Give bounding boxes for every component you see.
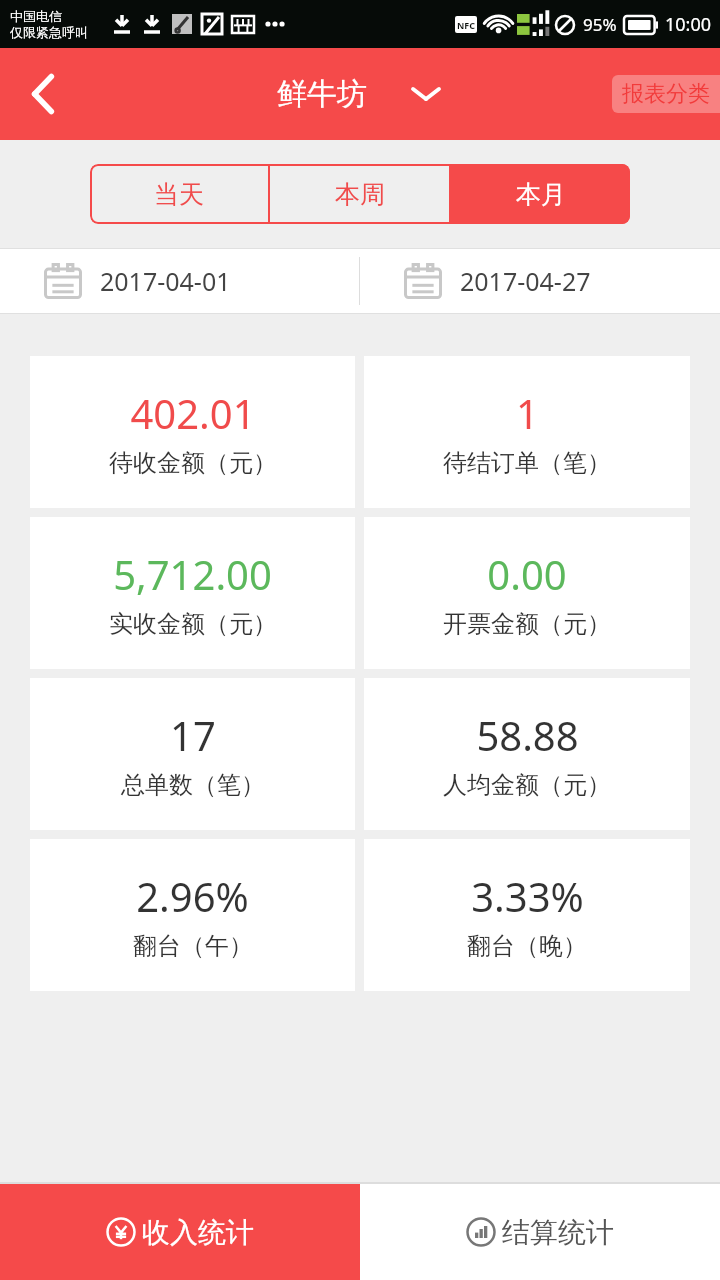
staticText: 3.33% [471,869,584,923]
button[interactable]: 鲜牛坊 [277,75,443,113]
button[interactable]: 1 [364,356,690,508]
button[interactable]: 本月 [451,164,630,224]
staticText: 收入统计 [142,1215,254,1250]
staticText: 0.00 [487,547,567,601]
staticText: 2017-04-27 [460,264,591,298]
staticText: 58.88 [476,708,579,762]
staticText: 2.96% [136,869,249,923]
staticText: 中国电信 [10,8,62,24]
button[interactable]: 2.96% [30,839,355,991]
button[interactable]: Back [0,48,86,140]
button[interactable]: 5,712.00 [30,517,355,669]
staticText: 鲜牛坊 [277,75,367,113]
button[interactable]: 58.88 [364,678,690,830]
staticText: 2017-04-01 [100,264,231,298]
staticText: 总单数（笔） [121,770,265,800]
button[interactable]: 3.33% [364,839,690,991]
staticText: 开票金额（元） [443,609,611,639]
staticText: 仅限紧急呼叫 [10,24,88,40]
button[interactable]: 17 [30,678,355,830]
staticText: 结算统计 [502,1215,614,1250]
staticText: 本周 [335,179,385,210]
button[interactable]: 结算统计 [360,1184,720,1280]
staticText: 实收金额（元） [109,609,277,639]
button[interactable]: 收入统计 [0,1184,360,1280]
staticText: 待收金额（元） [109,448,277,478]
staticText: 402.01 [130,386,256,440]
button[interactable]: 2017-04-27 [360,249,720,313]
button[interactable]: 本周 [270,164,449,224]
staticText: 报表分类 [622,80,710,108]
button[interactable]: 2017-04-01 [0,249,359,313]
staticText: 本月 [516,179,566,210]
button[interactable]: 0.00 [364,517,690,669]
staticText: 95% [583,13,617,36]
staticText: 人均金额（元） [443,770,611,800]
staticText: 翻台（午） [133,931,253,961]
staticText: 待结订单（笔） [443,448,611,478]
staticText: 1 [516,386,539,440]
staticText: NFC [457,19,476,31]
staticText: 5,712.00 [113,547,272,601]
staticText: 翻台（晚） [467,931,587,961]
staticText: 10:00 [665,12,712,37]
staticText: 当天 [154,179,204,210]
button[interactable]: 当天 [90,164,268,224]
button[interactable]: 报表分类 [612,75,720,113]
button[interactable]: 402.01 [30,356,355,508]
staticText: 17 [170,708,216,762]
